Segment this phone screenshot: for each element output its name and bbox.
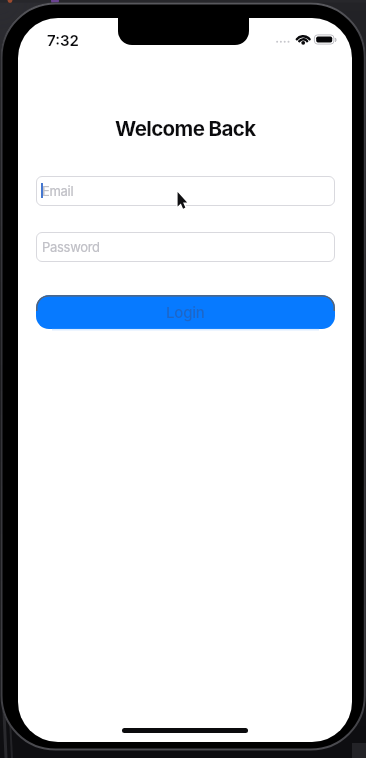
button[interactable]: Password [36, 232, 335, 262]
button[interactable]: Login [36, 295, 335, 329]
staticText: Password [42, 239, 100, 255]
button[interactable]: Email [36, 176, 335, 206]
staticText: Email [42, 183, 74, 199]
staticText: Login [166, 303, 205, 321]
staticText: 7:32 [47, 31, 79, 49]
staticText: Welcome Back [115, 116, 256, 141]
